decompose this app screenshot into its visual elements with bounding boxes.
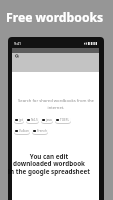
button[interactable]: Vulkan (14, 128, 30, 134)
button[interactable]: java (41, 117, 53, 123)
staticText: TOEFL (60, 118, 70, 122)
staticText: Search for shared wordbooks from the int… (18, 98, 94, 110)
staticText: java (46, 118, 52, 122)
button[interactable]: N4-5 (26, 117, 39, 123)
staticText: jpt (19, 118, 23, 122)
button[interactable]: French (32, 128, 48, 134)
staticText: You can edit downloaded wordbook in the … (8, 152, 90, 176)
staticText: Vulkan (19, 129, 29, 133)
staticText: N4-5 (31, 118, 38, 122)
button[interactable]: jpt (14, 117, 24, 123)
button[interactable]: TOEFL (55, 117, 71, 123)
button[interactable]: Search (12, 53, 99, 72)
staticText: Free wordbooks (6, 9, 104, 26)
staticText: 9:41 (14, 41, 22, 46)
staticText: French (37, 129, 47, 133)
